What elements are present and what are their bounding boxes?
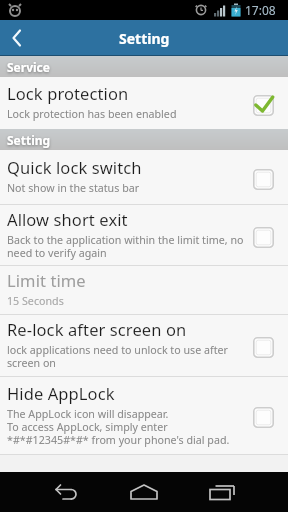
staticText: Setting bbox=[119, 29, 170, 48]
staticText: 15 Seconds bbox=[7, 294, 64, 309]
button[interactable]: Hide AppLock bbox=[0, 377, 288, 454]
button[interactable] bbox=[36, 472, 96, 512]
staticText: 17:08 bbox=[245, 2, 276, 18]
staticText: Back to the application within the limit… bbox=[7, 233, 244, 260]
staticText: Lock protection bbox=[7, 82, 129, 104]
button[interactable]: Allow short exit bbox=[0, 205, 288, 265]
button[interactable] bbox=[192, 472, 252, 512]
staticText: The AppLock icon will disappear. To acce… bbox=[7, 407, 230, 447]
staticText: Not show in the status bar bbox=[7, 181, 140, 196]
staticText: Service bbox=[7, 59, 50, 75]
button[interactable]: Lock protection bbox=[0, 77, 288, 129]
button[interactable]: Re-lock after screen on bbox=[0, 315, 288, 376]
staticText: Lock protection has been enabled bbox=[7, 107, 177, 122]
staticText: lock applications need to unlock to use … bbox=[7, 343, 228, 370]
staticText: Limit time bbox=[7, 269, 86, 291]
staticText: Allow short exit bbox=[7, 208, 128, 230]
staticText: Quick lock switch bbox=[7, 156, 142, 178]
button[interactable]: Limit time bbox=[0, 266, 288, 314]
button[interactable] bbox=[114, 472, 174, 512]
staticText: Hide AppLock bbox=[7, 382, 115, 404]
button[interactable]: Quick lock switch bbox=[0, 150, 288, 204]
button[interactable] bbox=[0, 20, 34, 56]
staticText: Setting bbox=[7, 132, 51, 148]
staticText: Re-lock after screen on bbox=[7, 318, 187, 340]
